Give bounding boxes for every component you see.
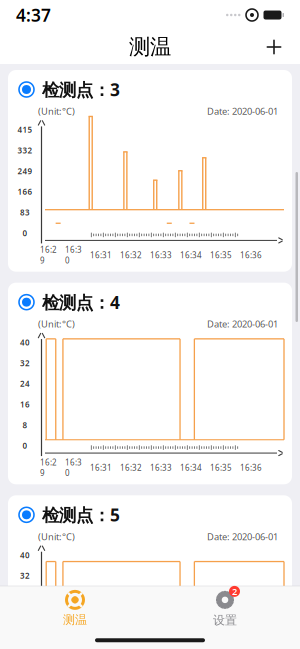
staticText: 2 [232, 585, 237, 598]
staticText: 16:35 [210, 462, 232, 473]
staticText: 测温 [129, 34, 171, 60]
staticText: 16:34 [180, 250, 202, 260]
staticText: 16:35 [210, 250, 232, 260]
staticText: (Unit:°C) [38, 318, 75, 330]
staticText: 16:32 [120, 250, 142, 260]
button[interactable]: 2 [150, 586, 300, 630]
button[interactable]: Add [258, 31, 290, 63]
staticText: 16:32 [120, 462, 142, 473]
staticText: 16:30 [65, 244, 82, 266]
staticText: 16:36 [240, 462, 262, 473]
staticText: 0 [22, 440, 27, 451]
staticText: (Unit:°C) [38, 530, 75, 543]
staticText: 4:37 [16, 3, 51, 26]
staticText: 83 [20, 207, 30, 218]
staticText: 16 [20, 399, 30, 410]
staticText: Date: 2020-06-01 [207, 105, 278, 117]
staticText: 16:34 [180, 462, 202, 473]
staticText: 8 [22, 420, 27, 430]
staticText: (Unit:°C) [38, 105, 75, 117]
staticText: 0 [22, 228, 27, 238]
staticText: 16:31 [90, 250, 112, 260]
staticText: 检测点：4 [42, 291, 120, 314]
staticText: 16:33 [150, 462, 172, 473]
staticText: Date: 2020-06-01 [207, 530, 278, 543]
staticText: 249 [17, 166, 32, 176]
staticText: 40 [20, 337, 30, 348]
staticText: 332 [17, 145, 32, 156]
staticText: Date: 2020-06-01 [207, 318, 278, 330]
staticText: 测温 [63, 612, 87, 627]
staticText: 16:30 [65, 457, 82, 478]
staticText: 16:29 [40, 244, 57, 266]
staticText: 415 [17, 124, 32, 135]
staticText: 32 [20, 358, 30, 368]
staticText: 16:36 [240, 250, 262, 260]
staticText: 24 [20, 378, 30, 389]
staticText: 166 [17, 186, 32, 197]
button[interactable]: 测温 [0, 586, 150, 630]
staticText: 32 [20, 570, 30, 581]
staticText: 40 [20, 550, 30, 560]
staticText: 设置 [213, 613, 237, 628]
staticText: 检测点：5 [42, 503, 120, 526]
staticText: 16:33 [150, 250, 172, 260]
staticText: 16:29 [40, 457, 57, 478]
staticText: 16:31 [90, 462, 112, 473]
staticText: 检测点：3 [42, 78, 120, 101]
